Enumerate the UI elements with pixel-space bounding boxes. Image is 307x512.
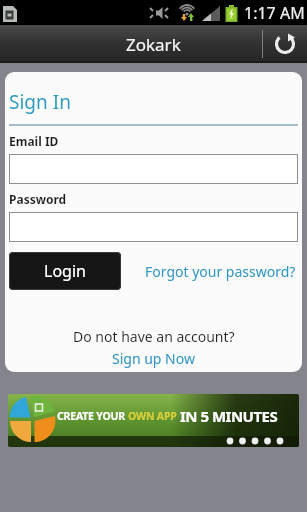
- staticText: Email ID: [9, 133, 59, 149]
- button[interactable]: [263, 25, 307, 63]
- button[interactable]: CREATE YOUR: [8, 394, 299, 447]
- staticText: Password: [9, 191, 67, 207]
- staticText: OWN APP: [128, 409, 180, 423]
- staticText: Sign In: [9, 89, 71, 115]
- button[interactable]: Sign up Now: [112, 349, 195, 368]
- staticText: 1:17 AM: [244, 2, 305, 24]
- staticText: Login: [44, 260, 86, 282]
- staticText: IN 5 MINUTES: [180, 406, 278, 426]
- button[interactable]: [9, 212, 298, 242]
- staticText: CREATE YOUR: [57, 409, 128, 423]
- staticText: Zokark: [126, 33, 181, 56]
- button[interactable]: [9, 154, 298, 184]
- button[interactable]: Login: [9, 252, 121, 290]
- staticText: Do not have an account?: [73, 327, 235, 346]
- button[interactable]: Forgot your password?: [145, 262, 296, 281]
